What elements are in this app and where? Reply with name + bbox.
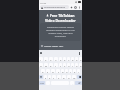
- staticText: 3: [50, 58, 52, 61]
- button[interactable]: 5: [59, 57, 62, 61]
- button[interactable]: a: [41, 69, 45, 73]
- staticText: Free TikTokian: [50, 13, 75, 18]
- button[interactable]: j: [69, 69, 72, 73]
- button[interactable]: b: [62, 75, 66, 79]
- staticText: q: [40, 64, 42, 67]
- button[interactable]: 6: [63, 57, 66, 61]
- staticText: g: [62, 70, 64, 73]
- button[interactable]: z: [44, 75, 47, 79]
- button[interactable]: More options: [78, 6, 81, 9]
- staticText: f: [58, 70, 59, 73]
- button[interactable]: Shift: [39, 75, 43, 79]
- staticText: 8: [72, 58, 74, 61]
- staticText: l: [78, 70, 79, 73]
- button[interactable]: m: [72, 75, 76, 79]
- button[interactable]: l: [77, 69, 80, 73]
- button[interactable]: d: [51, 69, 55, 73]
- staticText: 0: [80, 58, 82, 61]
- button[interactable]: n: [67, 75, 71, 79]
- staticText: u: [68, 64, 70, 67]
- staticText: tiktokdownloader.io: [44, 6, 66, 9]
- staticText: c: [53, 76, 55, 79]
- staticText: i: [72, 64, 73, 67]
- staticText: a: [42, 70, 44, 73]
- staticText: 5: [60, 58, 62, 61]
- staticText: 2: [45, 58, 47, 61]
- button[interactable]: e: [49, 63, 53, 67]
- button[interactable]: t: [59, 63, 62, 67]
- button[interactable]: 1: [39, 57, 43, 61]
- button[interactable]: 7: [67, 57, 70, 61]
- button[interactable]: k: [73, 69, 76, 73]
- button[interactable]: h: [65, 69, 68, 73]
- staticText: 10:24: [40, 1, 47, 4]
- button[interactable]: 8: [71, 57, 74, 61]
- staticText: k: [74, 70, 76, 73]
- staticText: 6: [64, 58, 66, 61]
- button[interactable]: Symbols: [39, 81, 45, 85]
- staticText: s: [47, 70, 49, 73]
- staticText: w: [45, 64, 47, 67]
- button[interactable]: s: [46, 69, 50, 73]
- staticText: 4: [55, 58, 57, 61]
- staticText: t: [60, 64, 61, 67]
- button[interactable]: g: [61, 69, 64, 73]
- button[interactable]: c: [52, 75, 56, 79]
- staticText: .: [72, 82, 73, 85]
- staticText: h: [66, 70, 68, 73]
- button[interactable]: tiktokdownloader.io: [40, 5, 69, 9]
- staticText: 7: [68, 58, 70, 61]
- button[interactable]: New tab: [70, 6, 73, 9]
- button[interactable]: o: [75, 63, 78, 67]
- button[interactable]: f: [56, 69, 60, 73]
- staticText: p: [80, 64, 82, 67]
- button[interactable]: v: [57, 75, 61, 79]
- staticText: b: [63, 76, 65, 79]
- staticText: n: [68, 76, 70, 79]
- button[interactable]: y: [63, 63, 66, 67]
- button[interactable]: Enter: [75, 81, 82, 85]
- staticText: Download TikTok videos without watermark…: [43, 25, 78, 37]
- button[interactable]: i: [71, 63, 74, 67]
- button[interactable]: w: [44, 63, 48, 67]
- button[interactable]: u: [67, 63, 70, 67]
- staticText: z: [45, 76, 47, 79]
- button[interactable]: p: [79, 63, 82, 67]
- button[interactable]: 9: [75, 57, 78, 61]
- staticText: o: [76, 64, 78, 67]
- staticText: 9: [76, 58, 78, 61]
- button[interactable]: 2: [44, 57, 48, 61]
- button[interactable]: 3: [49, 57, 53, 61]
- button[interactable]: Tabs: [74, 6, 77, 9]
- staticText: TikTok Video URL: [44, 44, 64, 47]
- staticText: v: [58, 76, 60, 79]
- staticText: e: [50, 64, 52, 67]
- staticText: 1: [40, 58, 42, 61]
- staticText: x: [49, 76, 51, 79]
- button[interactable]: 4: [54, 57, 58, 61]
- staticText: j: [70, 70, 71, 73]
- staticText: d: [52, 70, 54, 73]
- staticText: r: [55, 64, 57, 67]
- button[interactable]: q: [39, 63, 43, 67]
- button[interactable]: 0: [79, 57, 82, 61]
- button[interactable]: x: [48, 75, 51, 79]
- staticText: m: [73, 76, 76, 79]
- button[interactable]: Clipboard: [40, 52, 42, 54]
- staticText: Video Downloader: [45, 18, 76, 23]
- button[interactable]: Backspace: [77, 75, 82, 79]
- button[interactable]: r: [54, 63, 58, 67]
- staticText: ?123: [40, 82, 44, 84]
- staticText: y: [64, 64, 66, 67]
